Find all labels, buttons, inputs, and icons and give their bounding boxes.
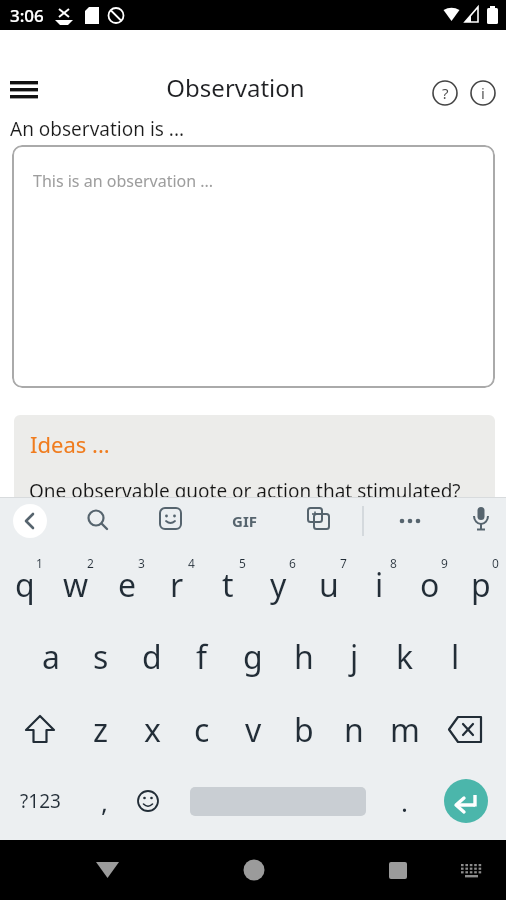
staticText: . xyxy=(401,784,408,819)
staticText: t xyxy=(222,563,234,607)
staticText: h xyxy=(294,635,314,679)
button[interactable] xyxy=(444,779,488,823)
staticText: f xyxy=(196,635,208,679)
staticText: This is an observation ... xyxy=(33,170,214,192)
button[interactable]: u xyxy=(304,549,354,621)
staticText: a xyxy=(42,635,60,679)
button[interactable]: . xyxy=(384,771,424,831)
button[interactable] xyxy=(302,504,336,538)
button[interactable] xyxy=(82,840,132,892)
button[interactable] xyxy=(130,783,166,819)
button[interactable]: l xyxy=(430,621,480,693)
button[interactable] xyxy=(374,840,424,892)
staticText: w xyxy=(63,563,89,607)
button[interactable] xyxy=(13,504,47,538)
button[interactable] xyxy=(228,840,278,892)
staticText: An observation is ... xyxy=(10,116,185,140)
staticText: q xyxy=(15,563,35,607)
button[interactable]: w xyxy=(51,549,101,621)
button[interactable]: e xyxy=(102,549,152,621)
staticText: , xyxy=(101,784,108,819)
button[interactable]: i xyxy=(470,80,496,106)
staticText: ? xyxy=(442,83,449,103)
staticText: d xyxy=(142,635,162,679)
button[interactable]: q xyxy=(0,549,50,621)
button[interactable]: a xyxy=(26,621,76,693)
staticText: 3:06 xyxy=(10,4,44,27)
button[interactable]: h xyxy=(279,621,329,693)
staticText: i xyxy=(481,83,485,103)
staticText: 9 xyxy=(441,555,448,571)
staticText: r xyxy=(170,563,184,607)
staticText: u xyxy=(319,563,339,607)
staticText: e xyxy=(118,563,137,607)
staticText: ?123 xyxy=(20,788,61,814)
button[interactable]: g xyxy=(228,621,278,693)
staticText: z xyxy=(93,708,109,752)
staticText: b xyxy=(294,708,314,752)
button[interactable]: ? xyxy=(432,80,458,106)
staticText: Ideas ... xyxy=(30,429,110,459)
staticText: 0 xyxy=(492,555,499,571)
staticText: v xyxy=(245,708,262,752)
button[interactable] xyxy=(438,704,494,756)
staticText: j xyxy=(350,635,359,679)
staticText: k xyxy=(396,635,414,679)
staticText: One observable quote or action that stim… xyxy=(29,478,461,504)
button[interactable]: x xyxy=(127,694,177,766)
button[interactable]: v xyxy=(228,694,278,766)
button[interactable] xyxy=(12,704,68,756)
staticText: 7 xyxy=(340,555,347,571)
button[interactable]: c xyxy=(177,694,227,766)
staticText: 3 xyxy=(138,555,145,571)
staticText: 1 xyxy=(36,555,43,571)
staticText: 5 xyxy=(239,555,246,571)
button[interactable]: p xyxy=(456,549,506,621)
button[interactable]: This is an observation ... xyxy=(12,145,495,388)
button[interactable]: y xyxy=(253,549,303,621)
button[interactable]: ?123 xyxy=(5,771,75,831)
staticText: 8 xyxy=(390,555,397,571)
staticText: x xyxy=(144,708,161,752)
button[interactable]: z xyxy=(76,694,126,766)
staticText: Observation xyxy=(166,71,305,104)
staticText: l xyxy=(451,635,460,679)
button[interactable] xyxy=(392,504,428,538)
staticText: g xyxy=(243,635,263,679)
button[interactable]: b xyxy=(279,694,329,766)
staticText: i xyxy=(375,563,384,607)
button[interactable]: j xyxy=(329,621,379,693)
staticText: 2 xyxy=(87,555,94,571)
staticText: y xyxy=(270,563,287,607)
button[interactable]: m xyxy=(380,694,430,766)
button[interactable]: r xyxy=(152,549,202,621)
button[interactable]: GIF xyxy=(214,504,274,538)
staticText: m xyxy=(390,708,420,752)
button[interactable]: f xyxy=(177,621,227,693)
button[interactable]: k xyxy=(380,621,430,693)
staticText: 4 xyxy=(188,555,195,571)
staticText: c xyxy=(194,708,210,752)
staticText: n xyxy=(344,708,364,752)
button[interactable] xyxy=(154,504,188,538)
button[interactable]: s xyxy=(76,621,126,693)
button[interactable]: , xyxy=(84,771,124,831)
button[interactable] xyxy=(81,504,115,538)
button[interactable] xyxy=(464,503,498,539)
staticText: p xyxy=(471,563,491,607)
staticText: o xyxy=(420,563,440,607)
button[interactable] xyxy=(4,75,44,105)
button[interactable]: d xyxy=(127,621,177,693)
button[interactable]: t xyxy=(203,549,253,621)
button[interactable]: i xyxy=(354,549,404,621)
button[interactable]: o xyxy=(405,549,455,621)
staticText: 6 xyxy=(289,555,296,571)
button[interactable] xyxy=(450,840,494,892)
staticText: s xyxy=(93,635,109,679)
staticText: GIF xyxy=(232,511,257,531)
button[interactable]: n xyxy=(329,694,379,766)
